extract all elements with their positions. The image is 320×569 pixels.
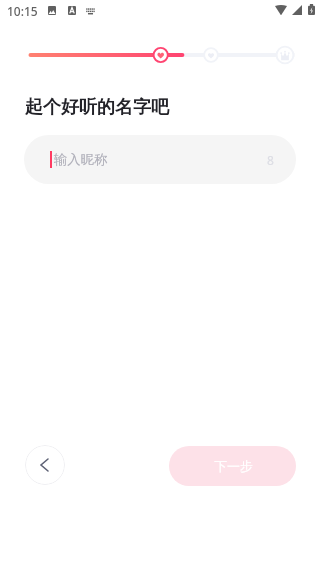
button[interactable]: 输入昵称 bbox=[24, 135, 296, 184]
staticText: 10:15 bbox=[7, 3, 38, 19]
staticText: 下一步 bbox=[214, 458, 253, 474]
button[interactable]: 下一步 bbox=[169, 446, 296, 486]
staticText: 起个好听的名字吧 bbox=[25, 96, 169, 119]
button[interactable]: Back bbox=[25, 445, 65, 485]
staticText: 输入昵称 bbox=[54, 151, 108, 168]
staticText: 8 bbox=[267, 152, 274, 168]
